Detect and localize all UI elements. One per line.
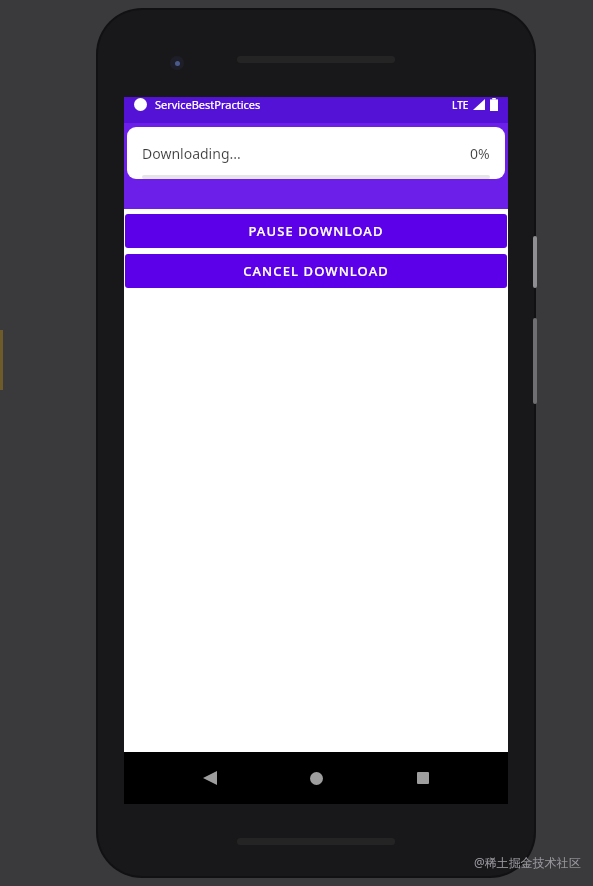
button[interactable]: Back xyxy=(189,757,231,799)
button[interactable]: Home xyxy=(295,757,337,799)
staticText: @稀土掘金技术社区 xyxy=(474,854,581,870)
button[interactable]: Recent apps xyxy=(402,757,444,799)
staticText: LTE xyxy=(452,98,469,112)
staticText: CANCEL DOWNLOAD xyxy=(243,262,389,280)
staticText: 0% xyxy=(470,144,490,163)
staticText: ServiceBestPractices xyxy=(155,97,261,112)
staticText: PAUSE DOWNLOAD xyxy=(248,222,384,240)
staticText: Downloading... xyxy=(142,144,241,163)
button[interactable]: CANCEL DOWNLOAD xyxy=(125,254,507,288)
button[interactable]: Downloading... xyxy=(127,127,505,179)
button[interactable]: PAUSE DOWNLOAD xyxy=(125,214,507,248)
